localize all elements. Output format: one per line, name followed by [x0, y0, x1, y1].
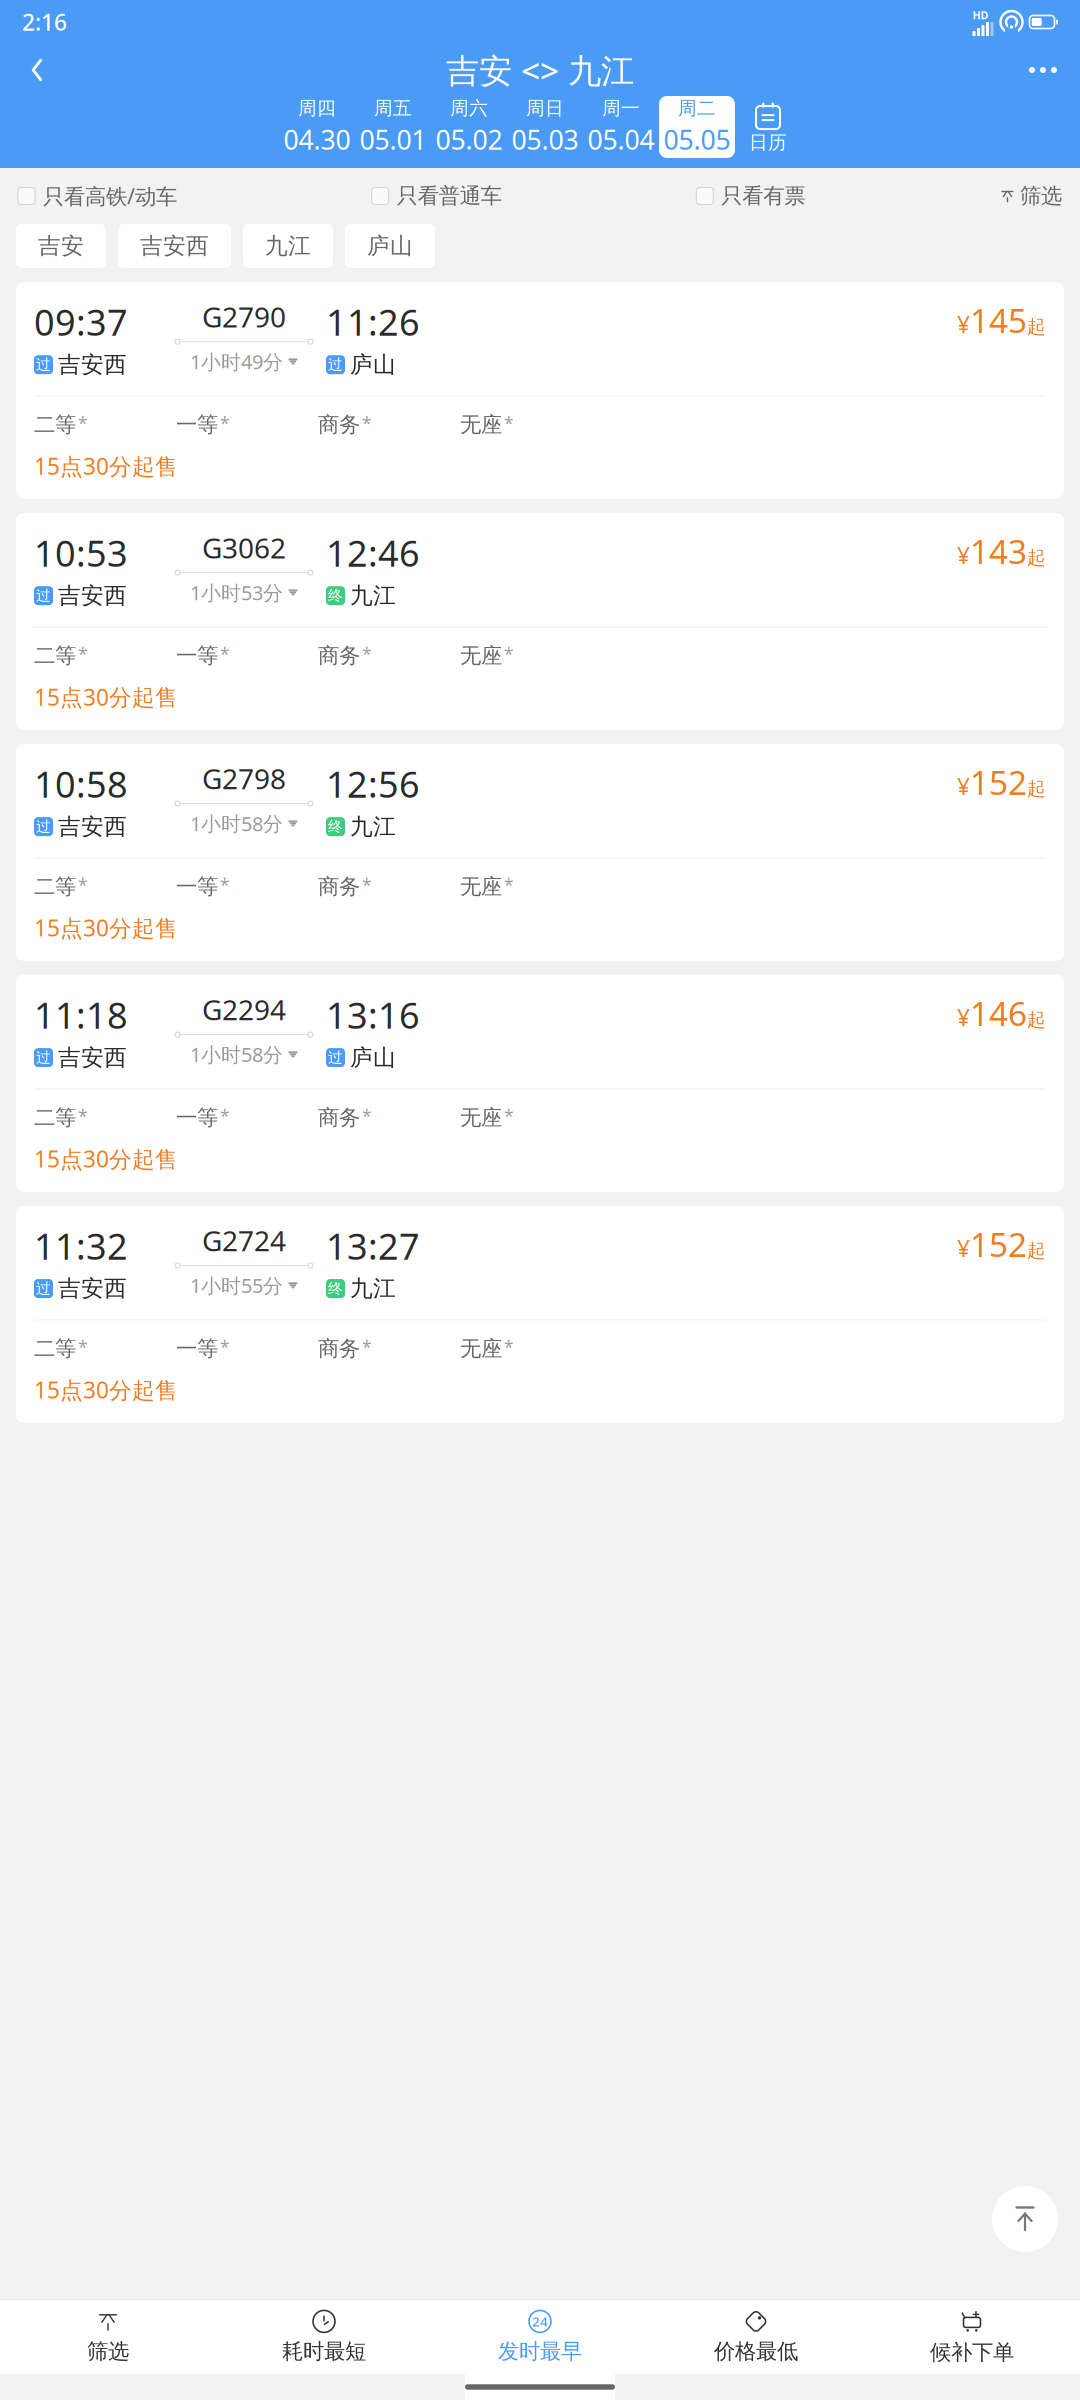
button[interactable]: 候补下单	[864, 2300, 1080, 2374]
staticText: *	[504, 412, 514, 435]
staticText: 1小时55分	[190, 1272, 283, 1299]
staticText: 庐山	[350, 1044, 396, 1071]
staticText: 庐山	[367, 232, 413, 260]
staticText: 过	[36, 587, 51, 605]
staticText: *	[78, 643, 88, 666]
button[interactable]: 吉安西	[118, 224, 231, 268]
staticText: ¥	[957, 1002, 970, 1032]
staticText: 起	[1027, 777, 1046, 800]
staticText: 终	[328, 818, 343, 836]
staticText: 过	[328, 1049, 343, 1067]
staticText: 吉安西	[58, 582, 127, 610]
staticText: *	[504, 643, 514, 666]
staticText: 吉安西	[58, 813, 127, 840]
staticText: 15点30分起售	[34, 1375, 178, 1405]
staticText: 过	[36, 1049, 51, 1067]
staticText: 终	[328, 1279, 343, 1297]
staticText: 10:53	[34, 529, 128, 577]
staticText: *	[220, 412, 230, 435]
button[interactable]: 九江	[243, 224, 333, 268]
staticText: 11:26	[326, 298, 420, 346]
button[interactable]: 价格最低	[648, 2300, 864, 2374]
staticText: 二等	[34, 643, 76, 669]
staticText: 终	[328, 587, 343, 605]
staticText: 无座	[460, 643, 502, 669]
button[interactable]: 庐山	[345, 224, 435, 268]
button[interactable]: 11:18	[16, 975, 1064, 1192]
button[interactable]: 筛选	[1000, 183, 1062, 209]
staticText: ¥	[957, 540, 970, 570]
staticText: 庐山	[350, 351, 396, 379]
button[interactable]: 周六	[431, 96, 507, 158]
staticText: 九江	[350, 582, 396, 610]
button[interactable]: 周一	[583, 96, 659, 158]
staticText: 146	[970, 991, 1027, 1035]
button[interactable]: 只看有票	[696, 183, 805, 209]
staticText: 九江	[350, 1275, 396, 1302]
staticText: 周日	[526, 97, 564, 120]
button[interactable]: 10:58	[16, 744, 1064, 961]
staticText: 周六	[450, 97, 488, 120]
staticText: 24	[532, 2312, 548, 2330]
button[interactable]: 11:32	[16, 1206, 1064, 1423]
staticText: 价格最低	[714, 2338, 798, 2365]
staticText: 12:46	[326, 529, 420, 577]
button[interactable]: 09:37	[16, 282, 1064, 499]
button[interactable]: 10:53	[16, 513, 1064, 730]
staticText: 1小时49分	[190, 348, 283, 375]
button[interactable]: 周四	[279, 96, 355, 158]
button[interactable]: 耗时最短	[216, 2300, 432, 2374]
button[interactable]: 周二	[659, 96, 735, 158]
staticText: HD	[972, 8, 988, 22]
staticText: 周一	[602, 97, 640, 120]
staticText: 15点30分起售	[34, 451, 178, 481]
staticText: 二等	[34, 1335, 76, 1362]
staticText: ¥	[957, 771, 970, 801]
staticText: 一等	[176, 1335, 218, 1362]
staticText: *	[220, 643, 230, 666]
staticText: *	[78, 1104, 88, 1127]
button[interactable]: 周日	[507, 96, 583, 158]
staticText: 05.02	[435, 122, 502, 157]
staticText: 只看有票	[721, 183, 805, 209]
staticText: *	[362, 643, 372, 666]
staticText: 九江	[265, 232, 311, 260]
staticText: 起	[1027, 546, 1046, 569]
staticText: 过	[36, 1279, 51, 1297]
staticText: 13:27	[326, 1222, 420, 1270]
button[interactable]: 返回	[10, 45, 64, 95]
staticText: 15点30分起售	[34, 682, 178, 712]
staticText: 起	[1027, 1239, 1046, 1262]
staticText: 1小时58分	[190, 810, 283, 837]
staticText: 二等	[34, 1104, 76, 1131]
staticText: 吉安西	[140, 232, 209, 260]
staticText: 05.04	[587, 122, 654, 157]
button[interactable]: 筛选	[0, 2300, 216, 2374]
staticText: 143	[970, 529, 1027, 573]
staticText: 无座	[460, 1335, 502, 1362]
staticText: ¥	[957, 1233, 970, 1263]
button[interactable]: 日历	[735, 96, 801, 158]
staticText: *	[362, 1335, 372, 1358]
staticText: *	[362, 412, 372, 435]
button[interactable]: 周五	[355, 96, 431, 158]
button[interactable]: 只看高铁/动车	[18, 182, 177, 210]
button[interactable]: 更多	[1016, 45, 1070, 95]
staticText: 145	[970, 298, 1027, 342]
staticText: 一等	[176, 643, 218, 669]
staticText: 05.01	[359, 122, 426, 157]
button[interactable]: 24	[432, 2300, 648, 2374]
staticText: *	[78, 874, 88, 897]
button[interactable]: 吉安	[16, 224, 106, 268]
staticText: *	[504, 1335, 514, 1358]
staticText: 商务	[318, 1335, 360, 1362]
staticText: 耗时最短	[282, 2338, 366, 2365]
staticText: G2294	[202, 991, 286, 1028]
staticText: 过	[36, 818, 51, 836]
button[interactable]: 回到顶部	[992, 2186, 1058, 2252]
staticText: 筛选	[1020, 183, 1062, 209]
button[interactable]: 只看普通车	[372, 183, 502, 209]
staticText: 日历	[749, 131, 787, 154]
staticText: *	[362, 1104, 372, 1127]
staticText: 11:18	[34, 991, 128, 1039]
